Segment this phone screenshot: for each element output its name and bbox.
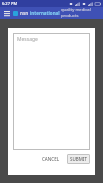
button[interactable]: SUBMIT (67, 154, 90, 164)
staticText: international (30, 10, 61, 16)
button[interactable]: CANCEL (39, 154, 63, 164)
staticText: Message (17, 36, 38, 43)
staticText: nsn (20, 10, 30, 16)
staticText: 6:27 PM (2, 1, 18, 6)
button[interactable]: Message (13, 33, 90, 150)
staticText: quality medical products (61, 7, 103, 19)
staticText: SUBMIT (70, 156, 87, 162)
button[interactable]: Open navigation menu (2, 9, 11, 18)
staticText: CANCEL (42, 156, 60, 162)
